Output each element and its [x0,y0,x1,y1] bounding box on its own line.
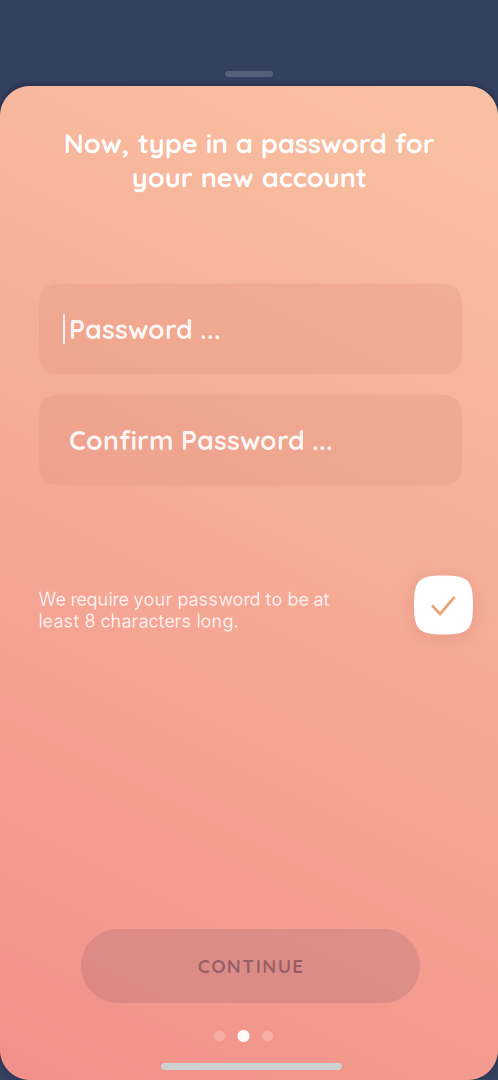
staticText: Now, type in a password for your new acc… [63,126,434,194]
button[interactable]: Password ... [39,283,462,374]
staticText: Confirm Password ... [69,423,333,457]
staticText: CONTINUE [198,954,303,978]
button[interactable]: Password requirement met [414,575,473,634]
button[interactable]: Confirm Password ... [39,394,462,485]
button[interactable]: CONTINUE [81,929,420,1003]
staticText: Password ... [69,312,221,346]
staticText: We require your password to be at least … [38,588,329,632]
